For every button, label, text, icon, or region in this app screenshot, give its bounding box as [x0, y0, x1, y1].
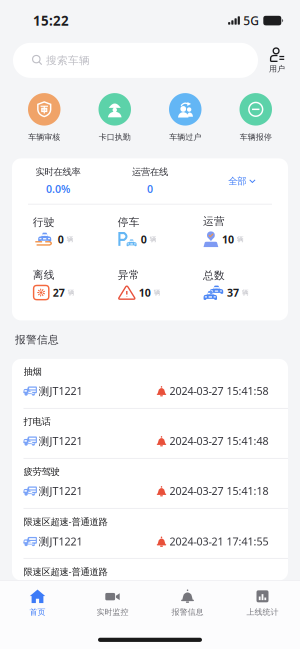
staticText: 0.0%: [46, 182, 70, 196]
staticText: 测JT1221: [39, 384, 83, 398]
button[interactable]: 用户: [258, 43, 296, 78]
staticText: 10: [139, 285, 151, 300]
staticText: 车辆过户: [169, 132, 201, 142]
staticText: 实时监控: [96, 607, 128, 617]
staticText: 10: [222, 232, 234, 246]
staticText: 辆: [237, 235, 244, 243]
button[interactable]: 搜索车辆: [13, 43, 258, 78]
staticText: 车辆审核: [28, 132, 60, 142]
button[interactable]: 抽烟: [12, 359, 288, 409]
button[interactable]: 上线统计: [225, 582, 300, 624]
staticText: 用户: [269, 64, 285, 74]
staticText: 报警信息: [15, 333, 59, 346]
staticText: 首页: [29, 607, 45, 617]
staticText: 搜索车辆: [46, 54, 90, 67]
staticText: 实时在线率: [35, 166, 80, 178]
staticText: 限速区超速-普通道路: [23, 515, 107, 528]
staticText: 行驶: [33, 216, 55, 229]
button[interactable]: 卡口执勤: [79, 93, 150, 142]
staticText: 0: [147, 182, 153, 196]
staticText: 辆: [150, 235, 157, 243]
staticText: 上线统计: [246, 607, 278, 617]
staticText: 全部: [228, 175, 246, 187]
staticText: 异常: [118, 268, 140, 282]
staticText: 2024-03-27 15:41:58: [169, 384, 268, 398]
staticText: 0: [58, 232, 64, 246]
button[interactable]: 限速区超速-普通道路: [12, 509, 288, 559]
staticText: 15:22: [33, 12, 69, 29]
staticText: 运营: [203, 215, 225, 228]
staticText: 停车: [118, 216, 140, 229]
staticText: 离线: [33, 268, 55, 282]
staticText: 卡口执勤: [99, 132, 131, 142]
button[interactable]: 全部: [196, 158, 288, 204]
staticText: 打电话: [23, 416, 50, 427]
button[interactable]: 车辆报停: [220, 93, 291, 142]
button[interactable]: 首页: [0, 582, 75, 624]
button[interactable]: 车辆过户: [150, 93, 220, 142]
staticText: 辆: [242, 288, 249, 297]
staticText: 车辆报停: [240, 132, 272, 142]
staticText: 辆: [67, 235, 74, 243]
staticText: 总数: [203, 269, 225, 282]
staticText: 疲劳驾驶: [23, 466, 59, 477]
staticText: 辆: [68, 288, 75, 297]
staticText: 37: [227, 285, 239, 300]
staticText: 报警信息: [171, 607, 203, 617]
staticText: 测JT1221: [39, 584, 83, 598]
button[interactable]: 打电话: [12, 409, 288, 459]
staticText: 2024-03-21 17:41:55: [169, 534, 268, 548]
staticText: 辆: [154, 288, 161, 297]
staticText: 2024-03-27 15:41:18: [169, 484, 268, 498]
staticText: 测JT1221: [39, 484, 83, 498]
staticText: 2024-03-27 15:41:48: [169, 434, 268, 448]
staticText: 27: [53, 285, 65, 300]
staticText: 2024-03-21 17:41:55: [169, 584, 268, 598]
button[interactable]: 报警信息: [150, 582, 225, 624]
button[interactable]: 疲劳驾驶: [12, 459, 288, 509]
button[interactable]: 限速区超速-普通道路: [12, 559, 288, 609]
button[interactable]: 实时监控: [75, 582, 150, 624]
staticText: 抽烟: [23, 366, 41, 377]
staticText: 限速区超速-普通道路: [23, 565, 107, 578]
staticText: 运营在线: [132, 166, 168, 178]
staticText: 测JT1221: [39, 534, 83, 548]
button[interactable]: 车辆审核: [9, 93, 79, 142]
staticText: 0: [141, 232, 147, 246]
staticText: 测JT1221: [39, 434, 83, 448]
staticText: 5G: [243, 13, 259, 28]
